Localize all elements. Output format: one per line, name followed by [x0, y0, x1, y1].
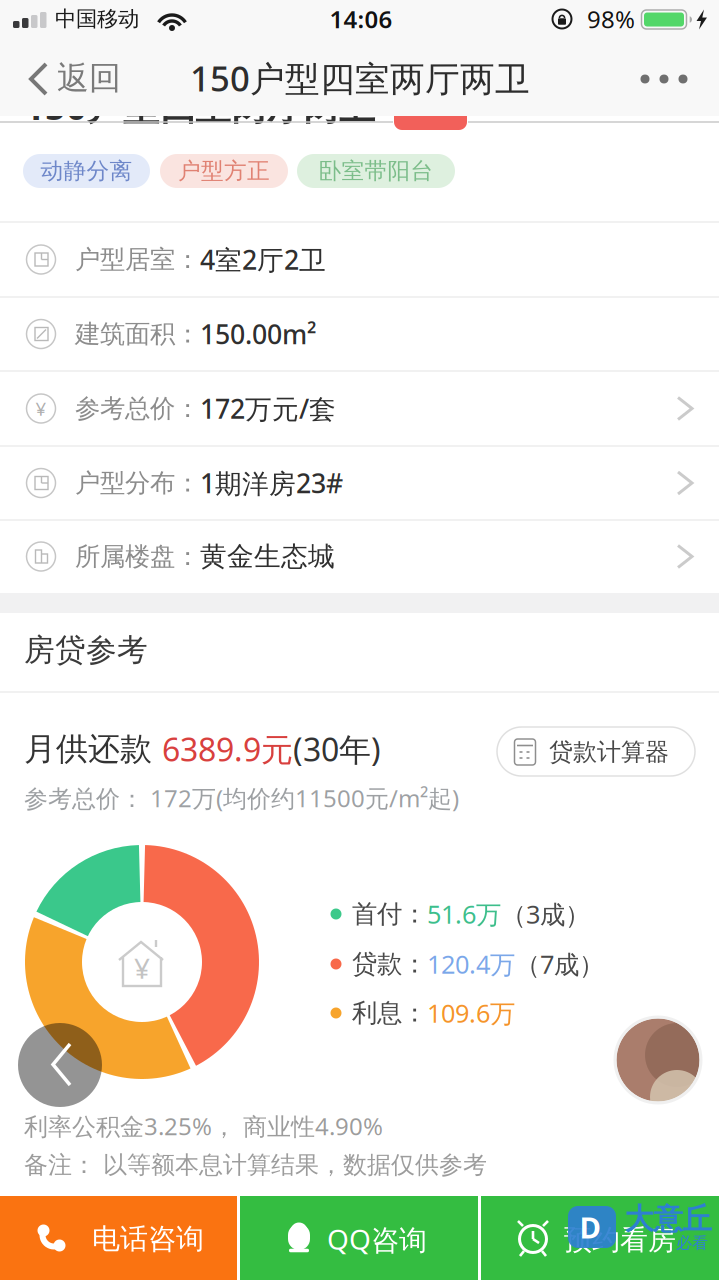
button[interactable]: 经纪人头像 — [615, 1017, 701, 1103]
button[interactable]: 返回 — [18, 1023, 102, 1107]
staticText: 120.4万 — [427, 947, 515, 981]
staticText: 中国移动 — [55, 6, 139, 32]
button[interactable]: 贷款计算器 — [497, 727, 695, 776]
staticText: 贷款计算器 — [549, 737, 669, 767]
staticText: 1期洋房23# — [200, 465, 343, 501]
button[interactable]: 返回 — [10, 51, 140, 107]
staticText: (30年) — [293, 728, 381, 770]
staticText: 参考总价： 172万(均价约11500元/m²起) — [24, 782, 459, 814]
staticText: 98% — [587, 3, 635, 35]
staticText: 电话咨询 — [92, 1222, 204, 1256]
staticText: 户型分布： — [75, 467, 200, 498]
button[interactable]: 电话咨询 — [0, 1196, 237, 1280]
staticText: 黄金生态城 — [200, 540, 335, 573]
staticText: 150.00m² — [200, 316, 317, 352]
staticText: 参考总价： — [75, 393, 200, 424]
staticText: 首付： — [352, 898, 427, 929]
staticText: ¥ — [134, 949, 150, 987]
staticText: 户型方正 — [178, 157, 270, 185]
staticText: 户型居室： — [75, 244, 200, 275]
staticText: 贷款： — [352, 948, 427, 979]
staticText: 动静分离 — [40, 157, 132, 185]
button[interactable]: 更多 — [624, 54, 704, 104]
staticText: ¥ — [35, 396, 46, 421]
staticText: （7成） — [515, 947, 604, 981]
staticText: 150户型四室两厅两卫 — [190, 55, 530, 101]
staticText: （3成） — [501, 897, 590, 931]
button[interactable] — [0, 446, 719, 519]
button[interactable] — [0, 520, 719, 593]
staticText: 备注： 以等额本息计算结果，数据仅供参考 — [24, 1150, 487, 1180]
button[interactable] — [0, 372, 719, 445]
staticText: 150户型四室两厅两卫 — [24, 82, 375, 130]
staticText: 预约看房 — [564, 1223, 676, 1257]
staticText: 利率公积金3.25%， 商业性4.90% — [24, 1110, 383, 1142]
button[interactable]: QQ咨询 — [240, 1196, 478, 1280]
staticText: 所属楼盘： — [75, 541, 200, 572]
staticText: 必看 — [676, 1233, 708, 1253]
staticText: 建筑面积： — [75, 318, 200, 349]
staticText: 172万元/套 — [200, 391, 336, 426]
staticText: 房贷参考 — [24, 631, 148, 669]
staticText: 109.6万 — [427, 996, 515, 1030]
staticText: 卧室带阳台 — [318, 157, 433, 185]
staticText: 14:06 — [329, 3, 392, 35]
staticText: 大意丘 — [624, 1201, 711, 1237]
staticText: 利息： — [352, 997, 427, 1028]
staticText: D — [579, 1207, 600, 1246]
staticText: 51.6万 — [427, 897, 501, 931]
staticText: 返回 — [57, 58, 121, 98]
button[interactable]: 预约看房 — [481, 1196, 719, 1280]
staticText: 6389.9元 — [162, 728, 293, 770]
staticText: 4室2厅2卫 — [200, 242, 326, 277]
staticText: 月供还款 — [24, 729, 162, 769]
staticText: QQ咨询 — [327, 1220, 427, 1258]
